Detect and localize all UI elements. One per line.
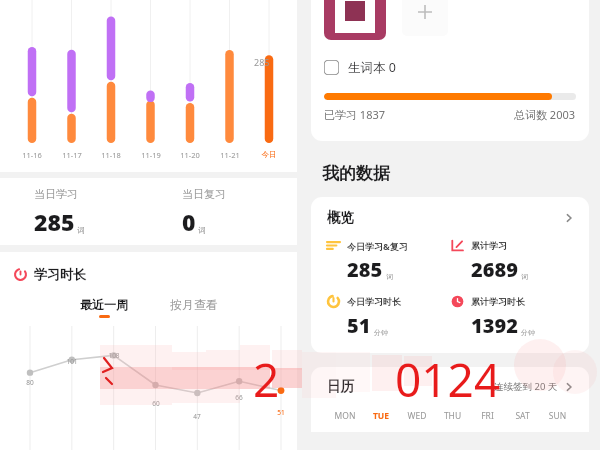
staticText: 连续签到 20 天	[494, 380, 558, 393]
staticText: 11-21	[215, 150, 245, 160]
staticText: 词	[77, 225, 85, 235]
button[interactable]: 添加词书	[402, 0, 448, 36]
staticText: 今日学习时长	[347, 296, 401, 307]
staticText: 概览	[327, 209, 354, 226]
staticText: 51	[347, 312, 371, 339]
staticText: 2689	[471, 256, 518, 283]
staticText: 分钟	[374, 328, 388, 337]
staticText: 累计学习	[471, 240, 507, 251]
staticText: 108	[104, 351, 124, 360]
button[interactable]: 今日学习时长	[327, 295, 451, 339]
staticText: 已学习 1837	[324, 107, 386, 122]
staticText: 101	[62, 357, 82, 366]
staticText: 285	[254, 56, 270, 68]
button[interactable]: 生词本 0	[324, 59, 396, 76]
staticText: 最近一周	[80, 297, 128, 312]
button[interactable]: 最近一周	[76, 295, 132, 320]
button[interactable]: 当日学习	[0, 178, 148, 245]
staticText: 11-19	[136, 150, 166, 160]
staticText: 按月查看	[170, 297, 218, 312]
button[interactable]: 当日复习	[148, 178, 297, 245]
staticText: 0	[182, 206, 196, 237]
button[interactable]	[324, 0, 386, 40]
staticText: 2	[253, 348, 280, 411]
staticText: 学习时长	[34, 266, 86, 282]
staticText: SAT	[505, 410, 540, 422]
staticText: 0124	[395, 348, 501, 411]
staticText: MON	[327, 410, 363, 422]
button[interactable]: 按月查看	[166, 295, 222, 320]
staticText: 51	[271, 408, 291, 417]
button[interactable]: 概览	[311, 197, 589, 353]
staticText: 66	[229, 393, 249, 402]
button[interactable]: 累计学习	[451, 239, 575, 283]
staticText: 总词数 2003	[514, 107, 576, 122]
staticText: 生词本 0	[348, 59, 396, 76]
staticText: 11-18	[96, 150, 126, 160]
staticText: 285	[34, 206, 75, 237]
button[interactable]: 今日学习&复习	[327, 239, 451, 283]
staticText: 47	[187, 412, 207, 421]
staticText: 11-20	[175, 150, 205, 160]
staticText: 今日学习&复习	[347, 240, 408, 252]
staticText: TUE	[363, 410, 399, 422]
staticText: 当日复习	[182, 187, 226, 201]
staticText: 11-17	[57, 150, 87, 160]
staticText: WED	[399, 410, 435, 422]
staticText: THU	[435, 410, 470, 422]
staticText: 日历	[327, 378, 354, 395]
staticText: 我的数据	[322, 163, 390, 184]
staticText: 词	[198, 225, 206, 235]
staticText: 累计学习时长	[471, 296, 525, 307]
staticText: 分钟	[521, 328, 535, 337]
staticText: 80	[20, 378, 40, 387]
button[interactable]: 累计学习时长	[451, 295, 575, 339]
staticText: 11-16	[17, 150, 47, 160]
staticText: SUN	[540, 410, 575, 422]
staticText: 60	[146, 399, 166, 408]
staticText: 词	[521, 272, 528, 281]
staticText: 当日学习	[34, 187, 78, 201]
button[interactable]: 日历	[311, 367, 589, 432]
staticText: 1392	[471, 312, 518, 339]
staticText: 285	[347, 256, 383, 283]
staticText: 今日	[254, 150, 284, 159]
staticText: 词	[386, 272, 393, 281]
staticText: FRI	[470, 410, 505, 422]
